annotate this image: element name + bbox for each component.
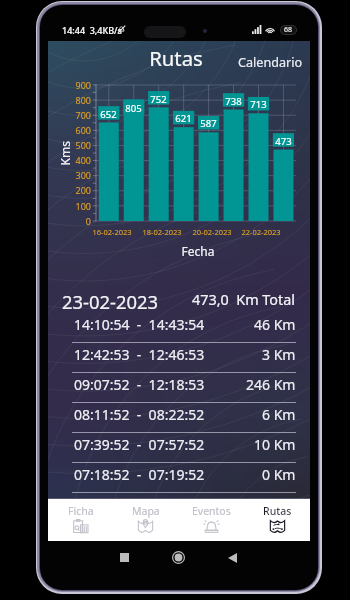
staticText: 0 Km <box>262 465 296 484</box>
button[interactable]: 14:10:54 - 14:43:54 <box>72 313 296 343</box>
staticText: 400 <box>48 154 91 166</box>
staticText: Rutas <box>263 504 292 518</box>
staticText: 18-02-2023 <box>136 227 188 237</box>
staticText: 3 Km <box>262 345 296 364</box>
button[interactable]: Mapa <box>113 499 178 541</box>
staticText: 752 <box>148 93 169 106</box>
staticText: 713 <box>248 98 269 111</box>
staticText: 14:10:54 - 14:43:54 <box>74 315 205 334</box>
button[interactable]: 07:39:52 - 07:57:52 <box>72 433 296 463</box>
staticText: Rutas <box>45 44 307 72</box>
staticText: 100 <box>48 200 91 212</box>
staticText: 200 <box>48 184 91 196</box>
button[interactable]: Rutas <box>244 499 310 541</box>
button[interactable]: 07:18:52 - 07:19:52 <box>72 463 296 493</box>
staticText: 16-02-2023 <box>86 227 138 237</box>
staticText: 08:11:52 - 08:22:52 <box>74 405 205 424</box>
staticText: 473 <box>273 135 294 148</box>
staticText: 600 <box>48 124 91 136</box>
staticText: 0 <box>48 215 91 227</box>
staticText: 800 <box>48 94 91 106</box>
staticText: 300 <box>48 169 91 181</box>
button[interactable]: 08:11:52 - 08:22:52 <box>72 403 296 433</box>
button[interactable]: 09:07:52 - 12:18:53 <box>72 373 296 403</box>
button[interactable]: Ficha <box>48 499 113 541</box>
staticText: 22-02-2023 <box>235 227 287 237</box>
staticText: 900 <box>48 79 91 91</box>
button[interactable]: Eventos <box>178 499 244 541</box>
button[interactable]: 12:42:53 - 12:46:53 <box>72 343 296 373</box>
button[interactable]: Home <box>172 551 185 564</box>
staticText: 700 <box>48 109 91 121</box>
staticText: Calendario <box>238 54 303 71</box>
staticText: 652 <box>98 108 119 121</box>
staticText: 68 <box>284 25 293 35</box>
staticText: 246 Km <box>246 375 296 394</box>
staticText: Kms <box>56 140 72 165</box>
staticText: Eventos <box>192 504 231 518</box>
staticText: 09:07:52 - 12:18:53 <box>74 375 205 394</box>
staticText: Fecha <box>172 243 224 259</box>
staticText: 23-02-2023 <box>62 289 158 311</box>
staticText: Mapa <box>132 504 160 518</box>
staticText: 10 Km <box>254 435 296 454</box>
button[interactable]: Calendario <box>230 48 311 77</box>
staticText: 46 Km <box>254 315 296 334</box>
staticText: 738 <box>223 95 244 108</box>
staticText: 20-02-2023 <box>186 227 238 237</box>
staticText: 07:18:52 - 07:19:52 <box>74 465 205 484</box>
staticText: 500 <box>48 139 91 151</box>
staticText: 473,0 Km Total <box>192 290 296 310</box>
button[interactable]: Back <box>228 553 237 563</box>
staticText: 07:39:52 - 07:57:52 <box>74 435 205 454</box>
staticText: 805 <box>123 102 144 115</box>
staticText: 6 Km <box>262 405 296 424</box>
staticText: 14:44 3,4KB/s <box>62 24 122 36</box>
staticText: 587 <box>198 117 219 130</box>
staticText: 621 <box>173 112 194 125</box>
staticText: Ficha <box>68 504 94 518</box>
staticText: 12:42:53 - 12:46:53 <box>74 345 205 364</box>
